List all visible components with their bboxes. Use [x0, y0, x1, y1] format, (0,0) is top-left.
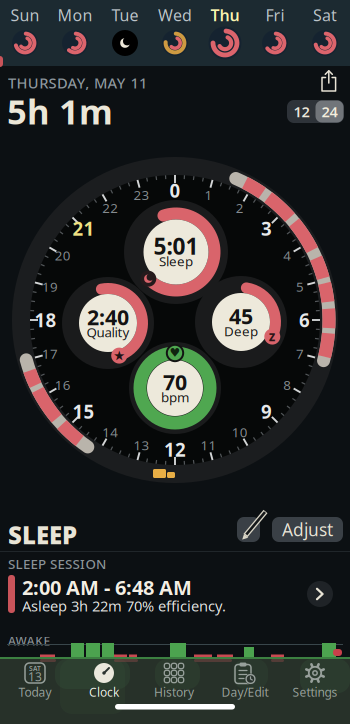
button[interactable]: Share [315, 68, 343, 94]
staticText: 10 [232, 423, 248, 441]
button[interactable]: Fri [250, 1, 300, 63]
staticText: Mon [57, 4, 92, 26]
button[interactable]: Adjust [272, 517, 343, 542]
button[interactable]: 12 hour clock [287, 100, 316, 123]
staticText: SLEEP SESSION [8, 555, 106, 573]
button[interactable]: Wed [150, 1, 200, 63]
staticText: Wed [158, 4, 192, 26]
staticText: 16 [55, 376, 71, 394]
staticText: 6 [299, 308, 310, 332]
staticText: 12 [164, 437, 186, 462]
staticText: Fri [265, 4, 284, 26]
staticText: Settings [292, 684, 337, 700]
staticText: 23 [133, 186, 149, 204]
staticText: ★ [113, 348, 125, 363]
staticText: 8 [283, 376, 291, 394]
staticText: Deep [224, 322, 258, 340]
staticText: z [269, 327, 276, 345]
staticText: Sat [313, 4, 337, 26]
staticText: SLEEP [8, 519, 77, 551]
staticText: Day/Edit [221, 684, 268, 700]
staticText: ♥ [169, 346, 180, 359]
staticText: 22 [102, 199, 118, 217]
button[interactable]: Sun [0, 1, 50, 63]
staticText: 5:01 [153, 231, 198, 261]
staticText: 15 [72, 399, 94, 424]
staticText: 18 [34, 308, 56, 332]
button[interactable]: Day/Edit [212, 659, 278, 703]
staticText: 5 [296, 278, 304, 295]
staticText: Clock [89, 684, 119, 700]
staticText: 9 [261, 399, 272, 424]
staticText: Sleep [159, 252, 193, 270]
button[interactable]: Edit sleep [237, 508, 268, 542]
button[interactable]: Sat [300, 1, 350, 63]
button[interactable]: Thu [200, 1, 250, 63]
staticText: 1 [204, 186, 212, 204]
staticText: 14 [102, 423, 118, 441]
staticText: bpm [161, 388, 189, 406]
staticText: 24 [321, 102, 337, 121]
staticText: 7 [296, 345, 304, 362]
staticText: 70 [163, 368, 187, 396]
staticText: Thu [210, 4, 239, 26]
staticText: AWAKE [8, 633, 51, 649]
staticText: History [154, 684, 194, 700]
button[interactable]: Tue [100, 1, 150, 63]
staticText: 3 [261, 216, 272, 241]
staticText: 0 [169, 178, 180, 203]
button[interactable]: Settings [282, 659, 348, 703]
button[interactable]: 24 hour clock [315, 100, 343, 122]
staticText: 12 [293, 102, 309, 121]
staticText: 11 [200, 436, 216, 454]
staticText: 13 [133, 436, 149, 454]
staticText: Asleep 3h 22m 70% efficiency. [22, 596, 226, 615]
staticText: 5h 1m [7, 88, 113, 134]
staticText: Tue [111, 4, 138, 26]
staticText: 17 [42, 345, 58, 362]
staticText: 19 [42, 278, 58, 295]
button[interactable]: Mon [50, 1, 100, 63]
staticText: 21 [72, 216, 94, 241]
staticText: Quality [86, 323, 129, 341]
staticText: 2:40 [87, 303, 129, 331]
button[interactable]: Today [2, 659, 68, 703]
staticText: Today [18, 684, 51, 700]
staticText: SAT [29, 664, 41, 673]
staticText: 45 [229, 302, 253, 330]
staticText: 2 [236, 199, 244, 217]
staticText: 20 [55, 246, 71, 264]
button[interactable]: Clock [71, 659, 137, 703]
staticText: 13 [28, 668, 42, 684]
button[interactable]: History [141, 659, 207, 703]
button[interactable]: 2:00 AM - 6:48 AM [0, 573, 350, 619]
staticText: 4 [283, 246, 291, 264]
staticText: Adjust [282, 518, 333, 541]
staticText: Sun [10, 4, 39, 26]
staticText: 2:00 AM - 6:48 AM [22, 574, 192, 601]
staticText: THURSDAY, MAY 11 [8, 73, 147, 92]
